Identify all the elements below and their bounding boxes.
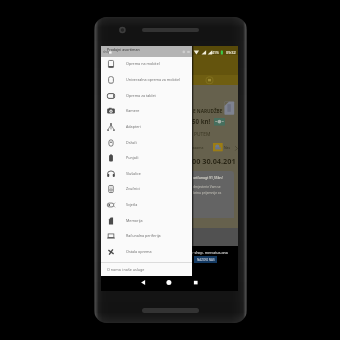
button[interactable]: Kamere bbox=[101, 103, 192, 119]
button[interactable]: NAZOVI NAS bbox=[194, 256, 217, 263]
button[interactable]: Računalna periferija bbox=[101, 228, 192, 244]
staticText: brinu prijemnije os bbox=[193, 191, 222, 195]
button[interactable]: Recent apps bbox=[188, 276, 204, 291]
staticText: dmjesterie Vam se bbox=[193, 185, 221, 189]
staticText: Svjetla bbox=[126, 202, 138, 207]
button[interactable]: Adapteri bbox=[101, 119, 192, 135]
button[interactable]: Univerzalna oprema za mobitel bbox=[101, 72, 192, 88]
staticText: Zvučnici bbox=[126, 186, 140, 191]
staticText: Kamere bbox=[126, 108, 140, 113]
staticText: Univerzalna oprema za mobitel bbox=[126, 77, 180, 82]
button[interactable]: Držači bbox=[101, 135, 192, 151]
staticText: Računalna periferija bbox=[126, 233, 161, 238]
staticText: 41% bbox=[212, 50, 219, 55]
staticText: r shop. mercatus.ona bbox=[192, 250, 228, 255]
staticText: Oprema na mobitel bbox=[126, 61, 160, 66]
staticText: NAZOVI NAS bbox=[197, 258, 215, 262]
button[interactable]: O nama i naše usluge bbox=[101, 262, 192, 276]
staticText: Memorija bbox=[126, 218, 143, 223]
staticText: PUTEM bbox=[194, 131, 211, 138]
staticText: Držači bbox=[126, 140, 137, 145]
button[interactable]: Memorija bbox=[101, 213, 192, 229]
staticText: Adapteri bbox=[126, 124, 141, 129]
staticText: kazama bbox=[191, 145, 204, 150]
staticText: E NARUDŽBE bbox=[193, 108, 223, 114]
button[interactable]: Svjetla bbox=[101, 197, 192, 213]
button[interactable]: Zvučnici bbox=[101, 181, 192, 197]
staticText: aričunagt 91,55kn! bbox=[193, 175, 223, 180]
staticText: Slušalice bbox=[126, 171, 141, 176]
staticText: Prodajni asortiman bbox=[107, 47, 140, 52]
staticText: Ostala oprema bbox=[126, 249, 152, 254]
button[interactable]: Back bbox=[135, 276, 151, 291]
staticText: Oprema za tablet bbox=[126, 93, 156, 98]
staticText: Punjači bbox=[126, 155, 139, 160]
staticText: 50 kn! bbox=[192, 117, 211, 125]
button[interactable]: Ostala oprema bbox=[101, 244, 192, 260]
staticText: shop bbox=[103, 50, 110, 54]
staticText: O nama i naše usluge bbox=[107, 267, 145, 272]
button[interactable]: Punjači bbox=[101, 150, 192, 166]
staticText: 09:32 bbox=[226, 50, 236, 55]
staticText: 00 30.04.201 bbox=[192, 156, 236, 166]
button[interactable]: Slušalice bbox=[101, 166, 192, 182]
button[interactable]: Oprema na mobitel bbox=[101, 56, 192, 72]
staticText: Nas bbox=[224, 145, 231, 150]
button[interactable]: Oprema za tablet bbox=[101, 88, 192, 104]
button[interactable]: Home bbox=[161, 276, 177, 291]
